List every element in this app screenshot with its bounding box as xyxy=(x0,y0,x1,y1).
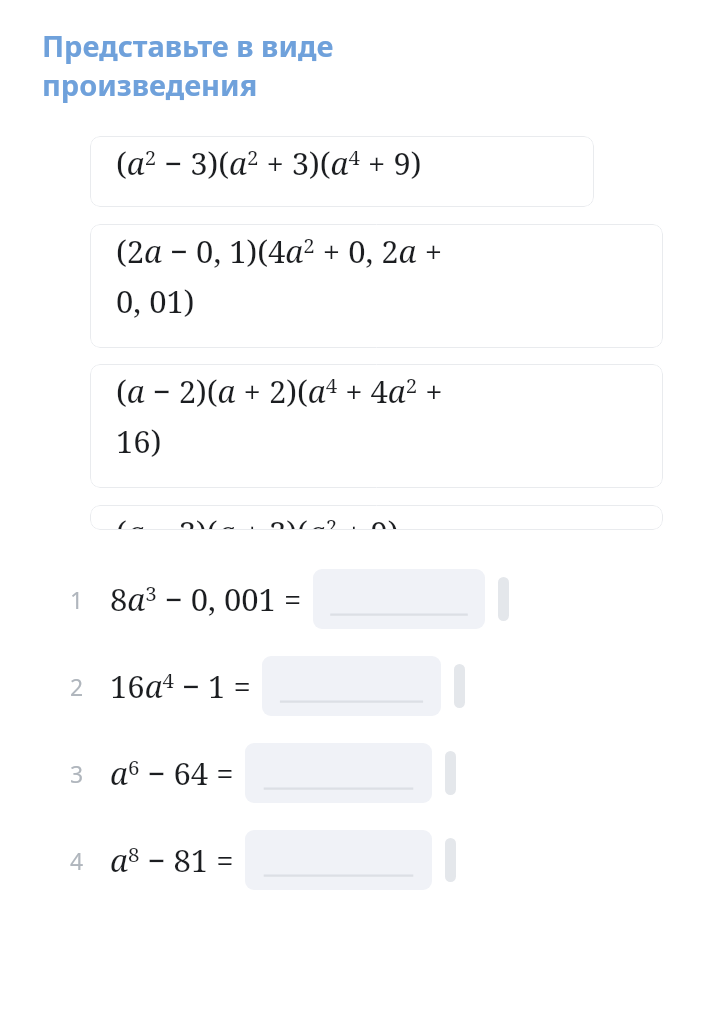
button[interactable] xyxy=(245,743,432,803)
staticText: 1 xyxy=(70,584,84,615)
button[interactable] xyxy=(245,830,432,890)
button[interactable]: (2a − 0, 1)(4a2 + 0, 2a + xyxy=(90,224,663,348)
staticText: 16) xyxy=(116,420,162,470)
staticText: a8 − 81 = xyxy=(110,839,234,881)
staticText: (a − 2)(a + 2)(a4 + 4a2 + xyxy=(116,370,443,420)
staticText: 0, 01) xyxy=(116,280,195,330)
staticText: a6 − 64 = xyxy=(110,752,234,794)
button[interactable]: 2 xyxy=(0,642,720,729)
staticText: (a − 3)(a + 3)(a2 + 9) xyxy=(116,511,399,530)
button[interactable] xyxy=(313,569,485,629)
staticText: (a2 − 3)(a2 + 3)(a4 + 9) xyxy=(116,142,422,192)
staticText: Представьте в виде xyxy=(42,26,334,65)
button[interactable]: 3 xyxy=(0,729,720,816)
button[interactable]: 4 xyxy=(0,816,720,903)
staticText: 3 xyxy=(70,758,84,789)
staticText: произведения xyxy=(42,65,258,104)
staticText: 8a3 − 0, 001 = xyxy=(110,578,302,620)
staticText: (2a − 0, 1)(4a2 + 0, 2a + xyxy=(116,230,442,280)
staticText: 16a4 − 1 = xyxy=(110,665,251,707)
button[interactable]: (a − 3)(a + 3)(a2 + 9) xyxy=(90,505,663,530)
button[interactable]: (a2 − 3)(a2 + 3)(a4 + 9) xyxy=(90,136,594,207)
button[interactable]: (a − 2)(a + 2)(a4 + 4a2 + xyxy=(90,364,663,488)
button[interactable]: 1 xyxy=(0,555,720,642)
staticText: 2 xyxy=(70,671,84,702)
staticText: 4 xyxy=(70,845,84,876)
button[interactable] xyxy=(262,656,441,716)
